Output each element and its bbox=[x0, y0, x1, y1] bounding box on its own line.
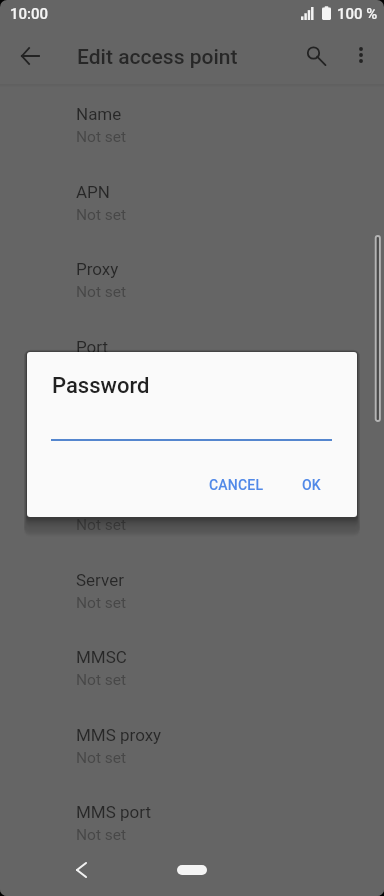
button[interactable]: Port bbox=[0, 319, 384, 397]
button[interactable]: Password bbox=[0, 474, 384, 552]
button[interactable]: MMS port bbox=[0, 784, 384, 845]
button[interactable]: Back bbox=[61, 850, 101, 890]
button[interactable]: Name bbox=[0, 86, 384, 164]
staticText: OK bbox=[302, 477, 321, 493]
button[interactable]: More options bbox=[342, 36, 380, 74]
button[interactable]: OK bbox=[286, 465, 336, 505]
button[interactable]: APN bbox=[0, 164, 384, 242]
button[interactable]: MMSC bbox=[0, 629, 384, 707]
staticText: MMS proxy bbox=[76, 725, 162, 745]
staticText: Not set bbox=[76, 826, 127, 844]
staticText: MMSC bbox=[76, 647, 127, 667]
staticText: Proxy bbox=[76, 259, 119, 279]
staticText: Password bbox=[52, 373, 150, 399]
staticText: APN bbox=[76, 182, 110, 202]
staticText: 100 % bbox=[337, 5, 378, 23]
button[interactable]: Proxy bbox=[0, 241, 384, 319]
button[interactable]: Navigate up bbox=[11, 37, 49, 75]
staticText: Not set bbox=[76, 438, 127, 456]
staticText: MMS port bbox=[76, 802, 151, 822]
button[interactable]: Search bbox=[297, 36, 335, 74]
staticText: Not set bbox=[76, 594, 127, 612]
button[interactable]: Server bbox=[0, 552, 384, 630]
button[interactable]: Home bbox=[177, 865, 207, 875]
staticText: Server bbox=[76, 570, 124, 590]
staticText: Not set bbox=[76, 516, 127, 534]
staticText: Not set bbox=[76, 749, 127, 767]
button[interactable]: Username bbox=[0, 396, 384, 474]
staticText: 10:00 bbox=[10, 5, 49, 23]
staticText: Not set bbox=[76, 671, 127, 689]
staticText: Port bbox=[76, 337, 109, 357]
staticText: CANCEL bbox=[209, 477, 264, 493]
staticText: Not set bbox=[76, 128, 127, 146]
staticText: Edit access point bbox=[77, 45, 238, 70]
staticText: Not set bbox=[76, 283, 127, 301]
button[interactable]: MMS proxy bbox=[0, 707, 384, 785]
staticText: Name bbox=[76, 104, 122, 124]
staticText: Not set bbox=[76, 206, 127, 224]
button[interactable]: CANCEL bbox=[193, 465, 279, 505]
